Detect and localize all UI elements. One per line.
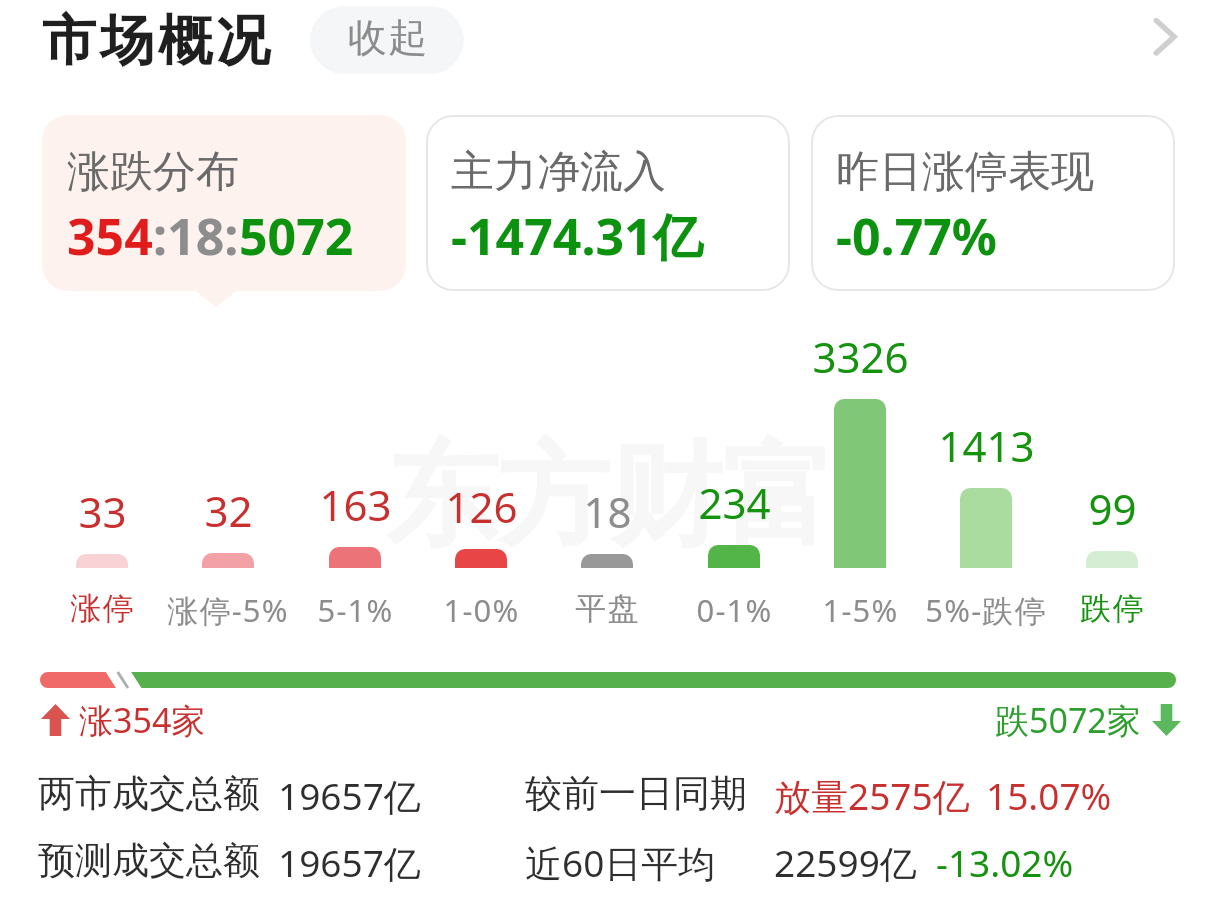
- staticText: 昨日涨停表现: [836, 145, 1094, 199]
- staticText: 近60日平均: [525, 837, 716, 888]
- staticText: -13.02%: [936, 837, 1074, 887]
- staticText: 1-5%: [822, 589, 899, 631]
- staticText: 1413: [938, 417, 1035, 474]
- staticText: 126: [445, 478, 518, 535]
- button[interactable]: 1-0% 126: [418, 330, 544, 625]
- staticText: 234: [698, 474, 771, 531]
- staticText: 19657亿: [278, 837, 421, 888]
- staticText: 163: [319, 476, 392, 533]
- button[interactable]: 市场概况: [40, 7, 272, 75]
- staticText: 涨跌分布: [67, 145, 239, 199]
- staticText: 99: [1088, 480, 1137, 537]
- staticText: 22599亿: [774, 837, 917, 888]
- staticText: 跌5072家: [995, 697, 1141, 743]
- staticText: 0-1%: [696, 589, 773, 631]
- staticText: 32: [204, 482, 253, 539]
- staticText: 市场概况: [40, 7, 272, 75]
- button[interactable]: 涨停-5% 32: [165, 330, 291, 625]
- staticText: 东方财富: [386, 426, 834, 556]
- button[interactable]: 收起: [310, 6, 464, 74]
- staticText: :18:: [153, 202, 239, 270]
- staticText: 15.07%: [986, 770, 1112, 820]
- staticText: 5%-跌停: [925, 589, 1047, 631]
- staticText: 354: [67, 202, 153, 270]
- button[interactable]: 涨跌分布: [42, 115, 406, 291]
- button[interactable]: 展开更多: [1140, 8, 1200, 68]
- button[interactable]: 1-5% 3326: [797, 330, 923, 625]
- button[interactable]: 涨354家: [41, 697, 206, 743]
- staticText: 18: [583, 483, 632, 540]
- staticText: 主力净流入: [451, 145, 666, 199]
- staticText: 3326: [812, 328, 909, 385]
- button[interactable]: [40, 672, 1176, 688]
- staticText: 预测成交总额: [38, 837, 260, 884]
- staticText: 涨停: [70, 589, 135, 628]
- staticText: 涨停-5%: [167, 589, 289, 631]
- staticText: 收起: [347, 13, 428, 62]
- button[interactable]: 跌5072家: [995, 697, 1181, 743]
- staticText: 较前一日同期: [525, 770, 747, 817]
- staticText: 两市成交总额: [38, 770, 260, 817]
- staticText: 1-0%: [443, 589, 520, 631]
- staticText: 平盘: [575, 589, 640, 628]
- button[interactable]: 平盘 18: [544, 330, 670, 625]
- staticText: 5072: [239, 202, 354, 270]
- staticText: -1474.31亿: [451, 202, 703, 270]
- button[interactable]: 涨停 33: [39, 330, 165, 625]
- staticText: 5-1%: [317, 589, 394, 631]
- staticText: 涨354家: [79, 697, 206, 743]
- staticText: 跌停: [1080, 589, 1145, 628]
- staticText: 33: [78, 483, 127, 540]
- staticText: 19657亿: [278, 770, 421, 821]
- staticText: 放量2575亿: [774, 770, 970, 821]
- button[interactable]: 昨日涨停表现: [811, 115, 1175, 291]
- button[interactable]: 0-1% 234: [671, 330, 797, 625]
- button[interactable]: 5-1% 163: [292, 330, 418, 625]
- button[interactable]: 跌停 99: [1049, 330, 1175, 625]
- button[interactable]: 主力净流入: [426, 115, 790, 291]
- button[interactable]: 5%-跌停 1413: [923, 330, 1049, 625]
- staticText: -0.77%: [836, 202, 997, 270]
